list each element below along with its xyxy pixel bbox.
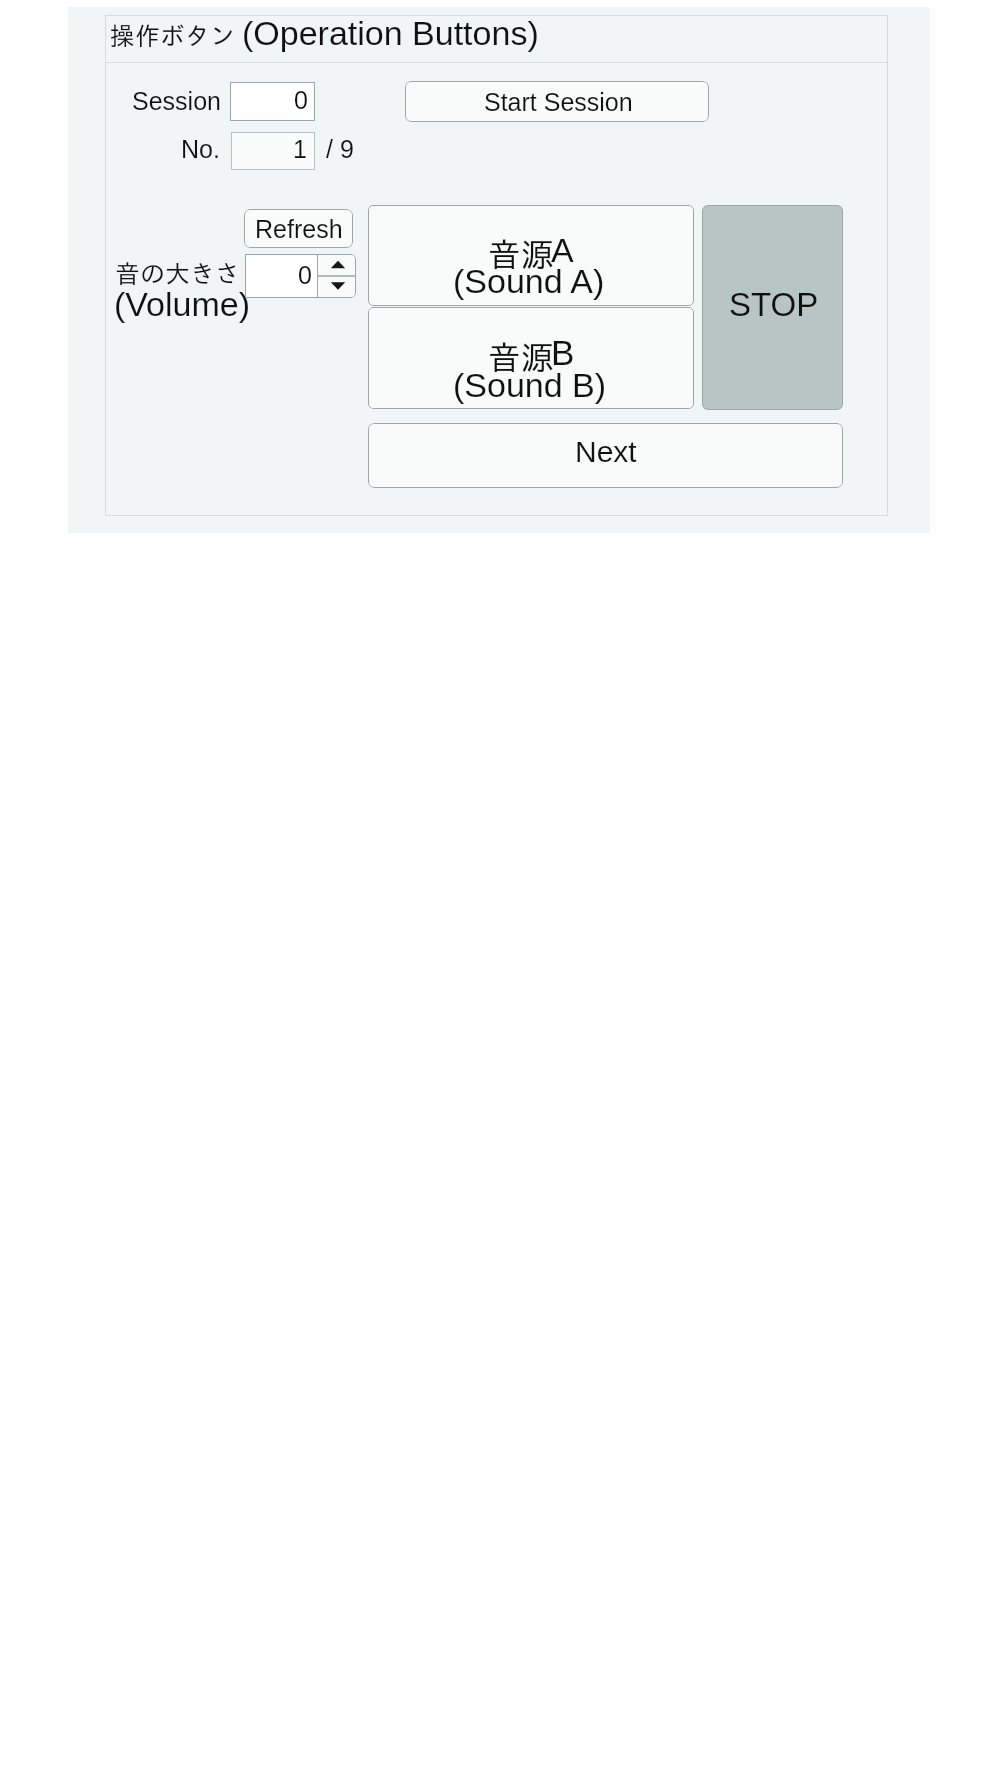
staticText: 音源 [488, 238, 554, 271]
button[interactable]: Increase volume [317, 254, 356, 276]
staticText: 音源 [488, 341, 554, 374]
staticText: 0 [294, 86, 308, 114]
staticText: 1 [293, 135, 307, 163]
staticText: STOP [729, 286, 819, 323]
button[interactable]: Next [368, 423, 843, 488]
staticText: Start Session [484, 88, 633, 116]
button[interactable]: Decrease volume [317, 276, 356, 298]
staticText: 0 [298, 261, 312, 289]
staticText: B [551, 333, 575, 372]
button[interactable]: 音源 [368, 205, 694, 306]
staticText: (Volume) [114, 285, 251, 323]
staticText: 音の大きさ [115, 261, 240, 286]
staticText: 操作ボタン [110, 23, 235, 48]
button[interactable]: Start Session [405, 81, 709, 122]
staticText: A [551, 231, 574, 269]
staticText: No. [181, 135, 220, 163]
staticText: (Operation Buttons) [242, 14, 539, 52]
staticText: Refresh [255, 215, 343, 243]
staticText: Next [575, 435, 637, 469]
staticText: (Sound A) [453, 262, 605, 300]
button[interactable]: STOP [702, 205, 843, 410]
button[interactable]: Refresh [244, 209, 353, 248]
staticText: Session [132, 87, 221, 115]
staticText: (Sound B) [453, 366, 607, 404]
button[interactable]: 音源 [368, 307, 694, 409]
staticText: / 9 [326, 135, 354, 163]
